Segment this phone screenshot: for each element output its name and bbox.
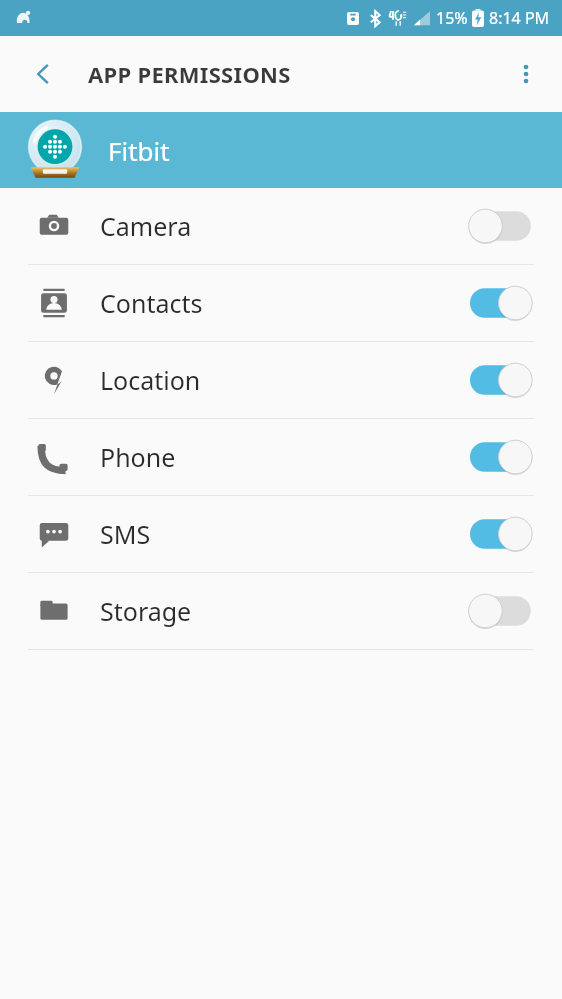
button[interactable]: Off	[470, 591, 534, 631]
button[interactable]: Contacts	[0, 265, 562, 341]
staticText: Location	[100, 363, 470, 397]
button[interactable]: Location	[0, 342, 562, 418]
staticText: 8:14 PM	[489, 7, 550, 29]
button[interactable]: Storage	[0, 573, 562, 649]
staticText: Phone	[100, 440, 470, 474]
button[interactable]: SMS	[0, 496, 562, 572]
staticText: Contacts	[100, 286, 470, 320]
button[interactable]: On	[470, 514, 534, 554]
button[interactable]: Phone	[0, 419, 562, 495]
staticText: Camera	[100, 209, 470, 243]
staticText: Fitbit	[108, 133, 170, 168]
button[interactable]: On	[470, 283, 534, 323]
button[interactable]: Off	[470, 206, 534, 246]
staticText: SMS	[100, 517, 470, 551]
button[interactable]: Camera	[0, 188, 562, 264]
staticText: 15%	[436, 7, 468, 29]
staticText: APP PERMISSIONS	[88, 59, 291, 89]
button[interactable]: On	[470, 437, 534, 477]
button[interactable]: More options	[500, 48, 552, 100]
staticText: Storage	[100, 594, 470, 628]
button[interactable]: On	[470, 360, 534, 400]
button[interactable]: Back	[16, 46, 72, 102]
